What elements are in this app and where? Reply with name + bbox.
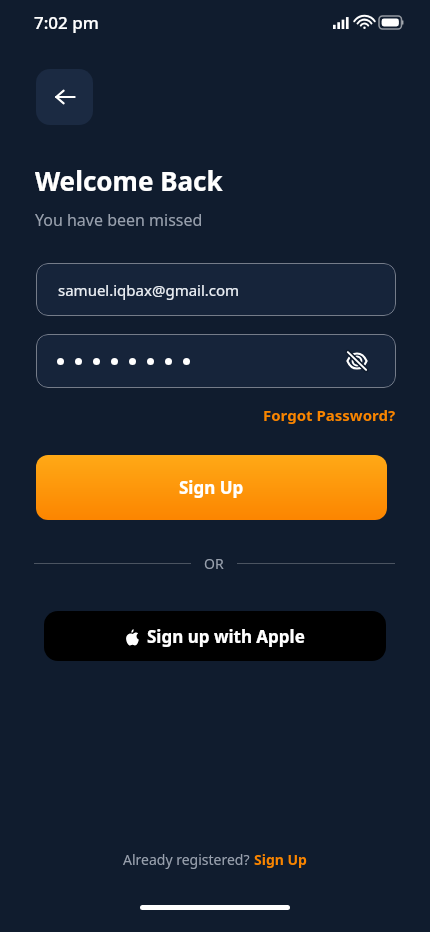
button[interactable]: Show password (342, 346, 372, 376)
staticText: Sign Up (254, 850, 307, 869)
staticText: Forgot Password? (263, 405, 396, 425)
staticText: Sign up with Apple (147, 625, 305, 648)
button[interactable]: Sign Up (36, 455, 387, 520)
button[interactable]: Forgot Password? (263, 405, 396, 425)
button[interactable]: Sign Up (254, 850, 307, 869)
button[interactable]: Show password (36, 334, 396, 388)
button[interactable]: Back (36, 69, 93, 125)
staticText: Welcome Back (35, 163, 223, 198)
button[interactable]: Sign up with Apple (44, 611, 386, 661)
staticText: Already registered? (123, 850, 254, 869)
staticText: 7:02 pm (34, 11, 99, 34)
staticText: samuel.iqbax@gmail.com (58, 280, 240, 300)
staticText: OR (204, 554, 224, 573)
button[interactable]: samuel.iqbax@gmail.com (36, 263, 396, 316)
staticText: Sign Up (179, 476, 244, 499)
staticText: You have been missed (35, 209, 203, 231)
